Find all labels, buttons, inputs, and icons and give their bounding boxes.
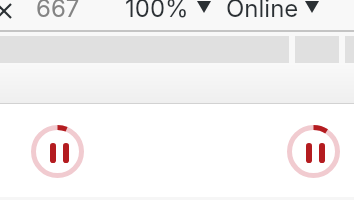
staticText: Online	[226, 0, 299, 23]
staticText: 667	[36, 0, 80, 23]
button[interactable]: Pause	[31, 125, 84, 178]
staticText: 100%	[125, 0, 189, 23]
button[interactable]: Close	[0, 0, 18, 25]
button[interactable]: Online	[226, 0, 319, 23]
button[interactable]: 100%	[125, 0, 211, 23]
button[interactable]: Pause	[287, 125, 340, 178]
